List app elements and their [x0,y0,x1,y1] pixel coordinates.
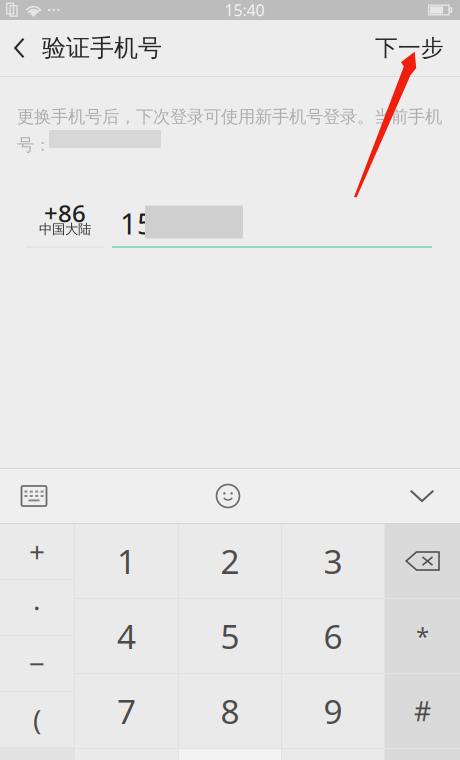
staticText: 验证手机号 [42,33,162,63]
button[interactable]: 7 [75,674,178,748]
button[interactable]: +86 [26,200,104,246]
staticText: 中国大陆 [39,221,91,237]
staticText: 7 [117,689,136,733]
staticText: * [416,620,429,652]
button[interactable]: Keyboard [2,469,66,523]
button[interactable]: 8 [179,674,281,748]
staticText: 下一步 [375,34,444,62]
staticText: 2 [220,539,239,583]
button[interactable]: Emoji [196,469,260,523]
button[interactable]: − [0,636,74,691]
button[interactable]: Back [0,20,174,76]
staticText: 15 [120,203,154,242]
staticText: 5 [220,614,239,658]
button[interactable]: 4 [75,599,178,673]
staticText: 更换手机号后，下次登录可使用新手机号登录。当前手机号： [17,106,442,156]
staticText: · [33,589,41,626]
button[interactable]: 下一步 [359,20,460,76]
staticText: +86 [44,197,86,229]
button[interactable]: ( [0,692,74,747]
staticText: 9 [323,689,342,733]
staticText: 4 [117,614,136,658]
button[interactable]: 5 [179,599,281,673]
staticText: 3 [323,539,342,583]
button[interactable]: Delete [385,524,460,598]
staticText: ( [33,701,41,738]
button[interactable]: 6 [282,599,384,673]
staticText: 6 [323,614,342,658]
staticText: − [29,645,45,682]
button[interactable]: 2 [179,524,281,598]
button[interactable]: 9 [282,674,384,748]
button[interactable]: · [0,580,74,635]
staticText: 1 [117,539,136,583]
button[interactable]: 1 [75,524,178,598]
button[interactable]: # [385,674,460,748]
button[interactable]: * [385,599,460,673]
staticText: 8 [220,689,239,733]
staticText: # [414,693,431,729]
staticText: + [29,533,45,570]
staticText: 15:40 [224,0,264,21]
button[interactable]: 3 [282,524,384,598]
button[interactable]: Hide keyboard [390,469,454,523]
button[interactable]: + [0,524,74,579]
